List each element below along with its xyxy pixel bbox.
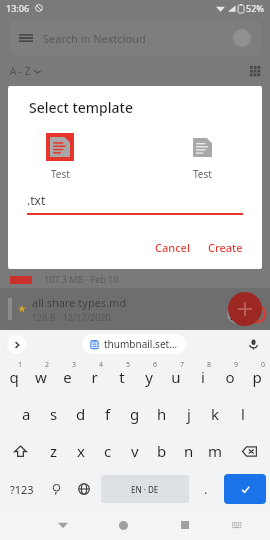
staticText: e xyxy=(63,367,72,387)
staticText: 4 xyxy=(99,360,104,370)
button[interactable]: x xyxy=(67,432,94,470)
staticText: 13:06 xyxy=(6,2,30,14)
button[interactable]: Voice input xyxy=(243,334,263,354)
button[interactable]: r xyxy=(81,358,108,395)
button[interactable]: y xyxy=(135,358,162,395)
staticText: 3 xyxy=(72,360,77,370)
staticText: u xyxy=(171,367,181,387)
staticText: w xyxy=(35,367,47,387)
button[interactable]: c xyxy=(94,432,121,470)
button[interactable]: Enter xyxy=(224,474,266,504)
staticText: d xyxy=(76,404,86,424)
staticText: ?123 xyxy=(10,482,34,497)
staticText: 1 xyxy=(18,360,23,370)
button[interactable]: d xyxy=(67,395,94,432)
staticText: Test xyxy=(193,167,212,181)
button[interactable]: e xyxy=(54,358,81,395)
staticText: . xyxy=(204,480,208,498)
staticText: f xyxy=(105,404,111,424)
staticText: Test xyxy=(51,167,70,181)
button[interactable]: k xyxy=(202,395,229,432)
button[interactable]: Create xyxy=(203,236,248,259)
button[interactable]: p xyxy=(243,358,270,395)
staticText: s xyxy=(50,404,58,424)
other: Menu xyxy=(19,31,33,45)
staticText: q xyxy=(9,367,19,387)
button[interactable]: q xyxy=(0,358,27,395)
button[interactable]: s xyxy=(40,395,67,432)
button[interactable]: Back xyxy=(32,510,93,540)
button[interactable]: g xyxy=(121,395,148,432)
button[interactable]: . xyxy=(192,470,220,508)
button[interactable]: f xyxy=(94,395,121,432)
button[interactable]: n xyxy=(175,432,202,470)
staticText: 2 xyxy=(45,360,50,370)
button[interactable]: z xyxy=(40,432,67,470)
staticText: 0 xyxy=(261,360,266,370)
staticText: Create xyxy=(208,240,243,255)
staticText: .txt xyxy=(27,192,46,208)
button[interactable]: o xyxy=(216,358,243,395)
staticText: 7 xyxy=(180,360,185,370)
staticText: o xyxy=(225,367,235,387)
button[interactable]: Add xyxy=(228,292,262,326)
staticText: h xyxy=(157,404,167,424)
button[interactable]: Shift xyxy=(0,432,40,470)
staticText: i xyxy=(201,367,205,387)
staticText: y xyxy=(145,367,153,387)
staticText: c xyxy=(104,441,112,461)
staticText: 128 B · 12/17/2020 xyxy=(32,311,111,323)
other: Account xyxy=(233,29,251,47)
button[interactable]: h xyxy=(148,395,175,432)
staticText: g xyxy=(130,404,140,424)
button[interactable]: EN · DE xyxy=(101,475,189,503)
staticText: 6 xyxy=(153,360,158,370)
button[interactable]: Emoji and comma xyxy=(43,470,70,508)
button[interactable]: u xyxy=(162,358,189,395)
button[interactable]: thumbnail.set… xyxy=(82,334,186,354)
button[interactable]: Cancel xyxy=(150,236,195,259)
staticText: 52% xyxy=(246,2,264,14)
staticText: 107.3 MB · Feb 10 xyxy=(44,273,119,285)
button[interactable]: Home xyxy=(93,510,154,540)
staticText: EN · DE xyxy=(131,484,159,495)
button[interactable]: Recent apps xyxy=(154,510,215,540)
button[interactable]: Backspace xyxy=(229,432,270,470)
staticText: 9 xyxy=(234,360,239,370)
button[interactable]: j xyxy=(175,395,202,432)
button[interactable]: v xyxy=(121,432,148,470)
staticText: k xyxy=(211,404,220,424)
staticText: 8 xyxy=(207,360,212,370)
staticText: all share types.md xyxy=(32,295,127,310)
staticText: v xyxy=(131,441,139,461)
button[interactable]: Menu xyxy=(9,21,261,55)
staticText: 5 xyxy=(126,360,131,370)
staticText: a xyxy=(22,404,31,424)
staticText: z xyxy=(50,441,58,461)
staticText: t xyxy=(119,367,125,387)
staticText: n xyxy=(184,441,194,461)
button[interactable]: i xyxy=(189,358,216,395)
staticText: Cancel xyxy=(155,240,190,255)
button[interactable]: Change language xyxy=(70,470,98,508)
button[interactable]: m xyxy=(202,432,229,470)
button[interactable]: Test xyxy=(44,131,76,183)
button[interactable]: Hide keyboard xyxy=(215,510,258,540)
button[interactable]: More suggestions xyxy=(7,335,26,354)
button[interactable]: b xyxy=(148,432,175,470)
button[interactable]: a xyxy=(13,395,40,432)
staticText: thumbnail.set… xyxy=(104,337,178,351)
staticText: b xyxy=(157,441,167,461)
staticText: j xyxy=(187,404,191,424)
button[interactable]: t xyxy=(108,358,135,395)
staticText: Search in Nextcloud xyxy=(43,31,146,46)
button[interactable]: Test xyxy=(186,131,218,183)
button[interactable]: w xyxy=(27,358,54,395)
staticText: Select template xyxy=(29,98,133,117)
staticText: x xyxy=(77,441,85,461)
button[interactable]: ?123 xyxy=(0,470,43,508)
staticText: l xyxy=(241,404,245,424)
staticText: r xyxy=(91,367,98,387)
staticText: A - Z xyxy=(10,64,31,78)
button[interactable]: l xyxy=(229,395,256,432)
